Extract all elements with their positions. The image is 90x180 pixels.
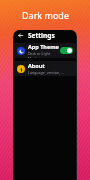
button[interactable]: About <box>14 61 76 76</box>
staticText: Settings <box>28 31 55 40</box>
button[interactable]: Dark mode toggle <box>60 47 73 54</box>
button[interactable]: App Theme <box>14 43 76 58</box>
button[interactable]: Back <box>16 31 25 40</box>
staticText: Language, version, ... <box>28 70 64 75</box>
staticText: Dark mode <box>22 9 69 21</box>
staticText: About <box>28 62 45 69</box>
staticText: Dark or Light Mode <box>28 51 60 58</box>
staticText: App Theme <box>28 43 59 50</box>
